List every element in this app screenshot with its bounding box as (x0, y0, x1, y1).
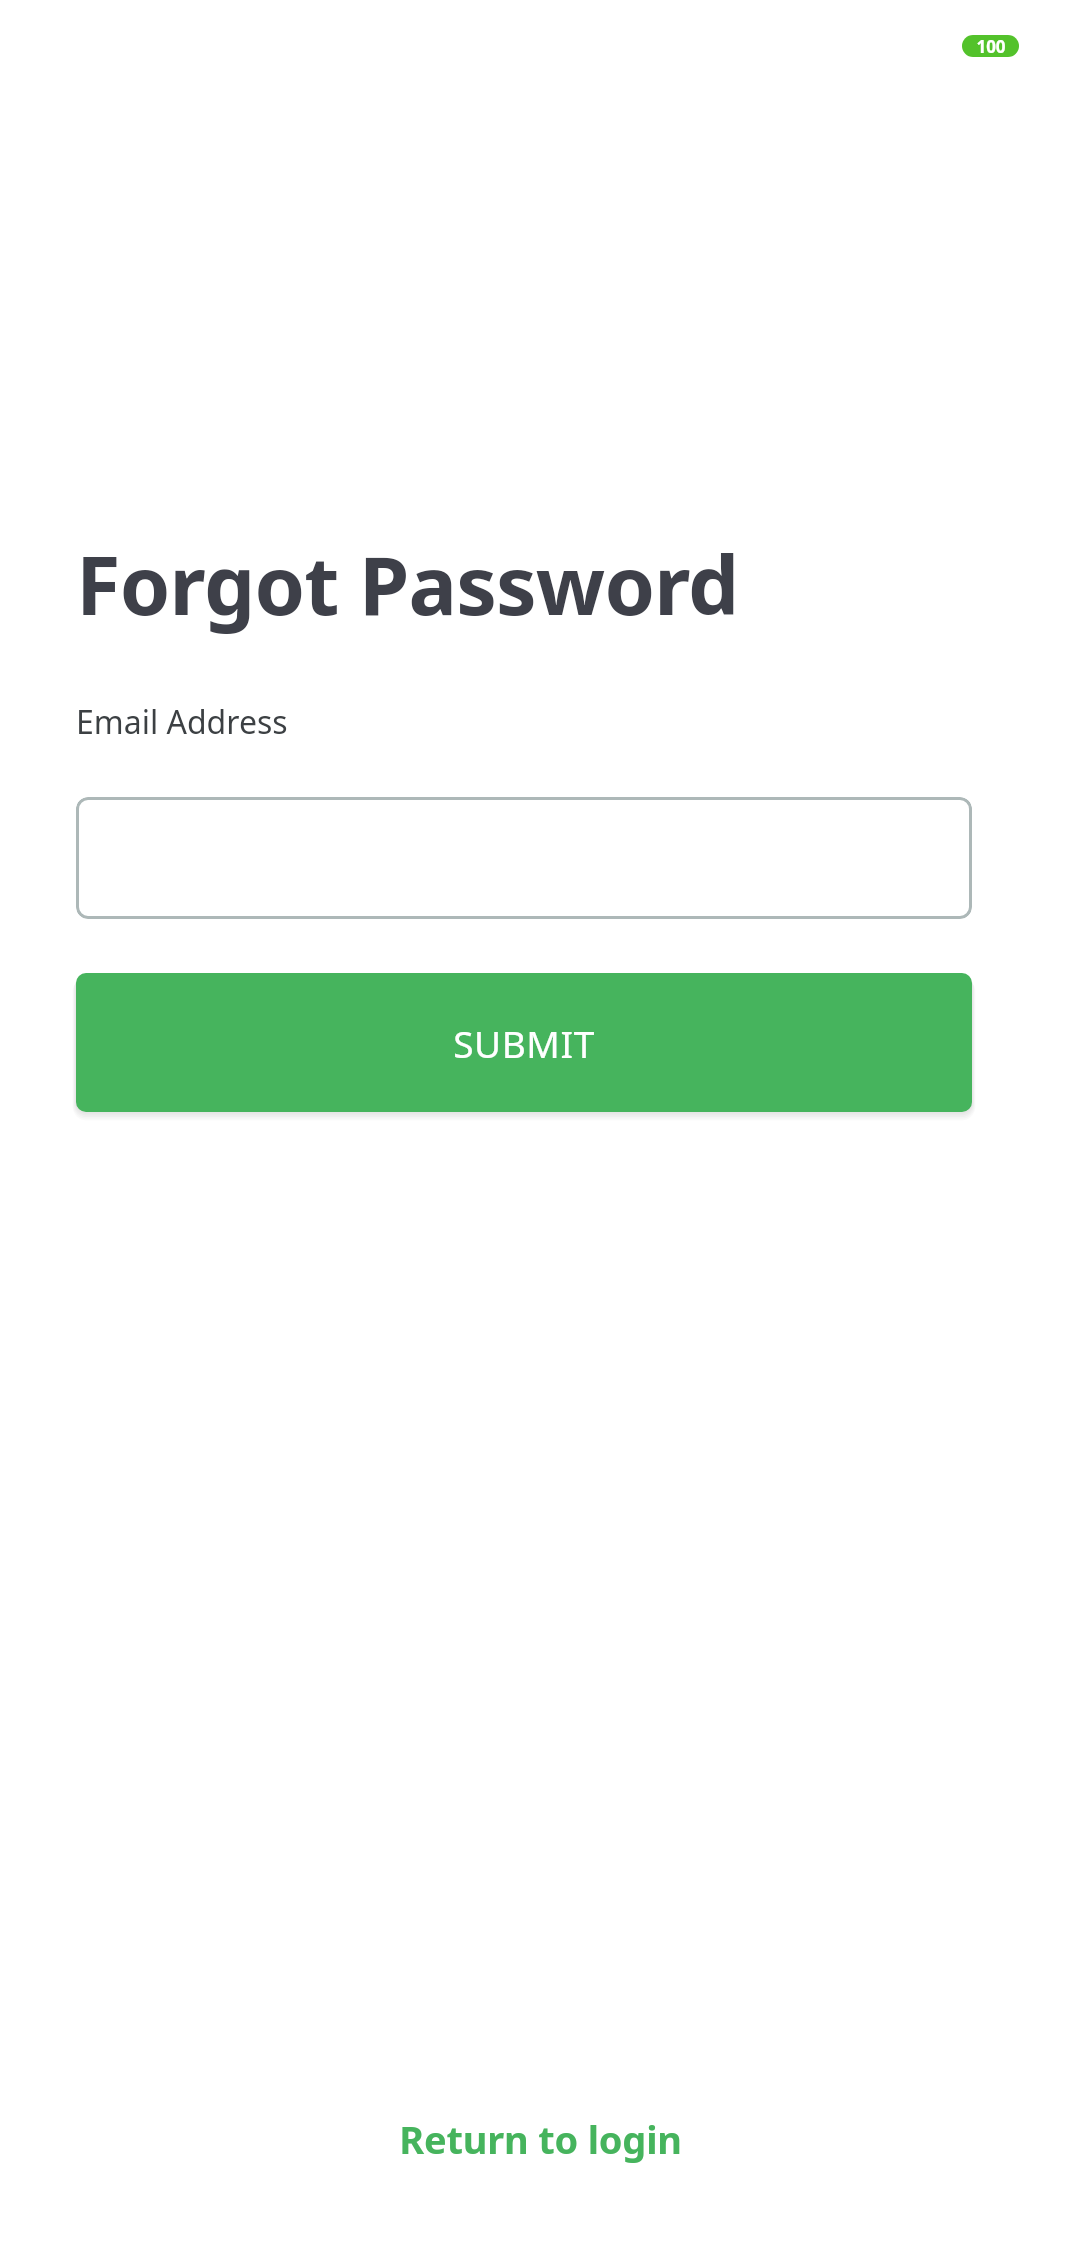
button[interactable]: Email Address input field (76, 797, 972, 919)
button[interactable]: Return to login (0, 2101, 1080, 2177)
staticText: Return to login (399, 2113, 682, 2165)
staticText: 100 (976, 35, 1006, 57)
button[interactable]: Battery 100 (962, 35, 1019, 57)
staticText: Email Address (76, 700, 288, 744)
staticText: Forgot Password (76, 528, 739, 638)
staticText: SUBMIT (453, 1018, 595, 1068)
button[interactable]: SUBMIT (76, 973, 972, 1112)
